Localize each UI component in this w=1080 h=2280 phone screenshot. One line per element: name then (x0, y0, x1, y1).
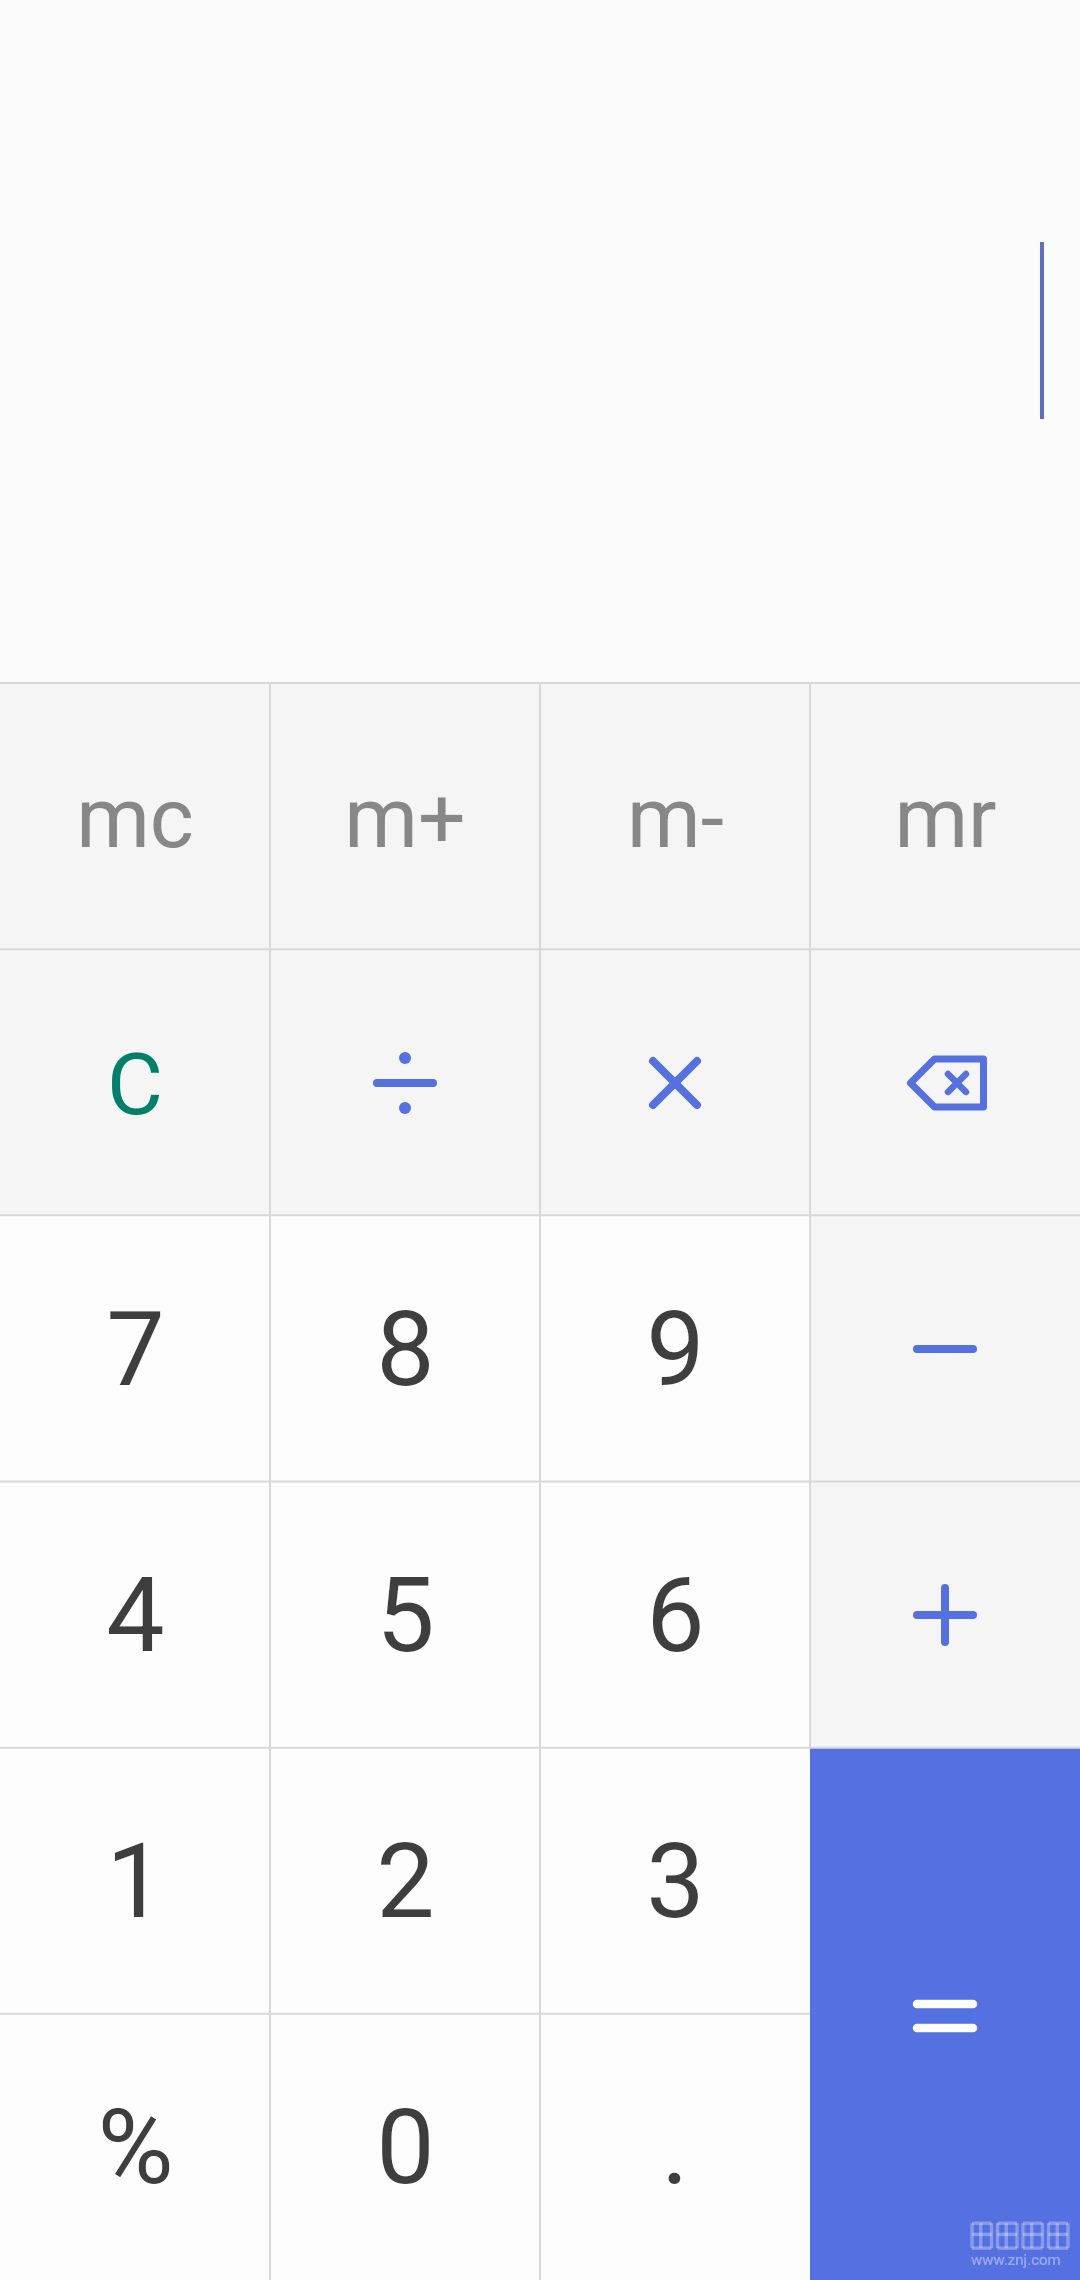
staticText: 9 (646, 1289, 705, 1411)
button[interactable]: Equals (810, 1748, 1080, 2280)
button[interactable]: C (0, 950, 270, 1216)
staticText: 6 (646, 1555, 705, 1677)
staticText: m- (627, 769, 724, 867)
button[interactable]: m- (540, 683, 810, 950)
staticText: 3 (646, 1821, 705, 1943)
staticText: 1 (106, 1821, 165, 1943)
button[interactable]: m+ (270, 683, 540, 950)
button[interactable]: Minus (810, 1216, 1080, 1482)
staticText: 8 (376, 1289, 435, 1411)
button[interactable]: 5 (270, 1482, 540, 1748)
button[interactable]: 7 (0, 1216, 270, 1482)
button[interactable]: Divide (270, 950, 540, 1216)
button[interactable]: mc (0, 683, 270, 950)
staticText: % (97, 2087, 174, 2209)
button[interactable]: mr (810, 683, 1080, 950)
button[interactable]: Multiply (540, 950, 810, 1216)
button[interactable]: 4 (0, 1482, 270, 1748)
staticText: 7 (106, 1289, 165, 1411)
button[interactable]: % (0, 2014, 270, 2280)
button[interactable]: 6 (540, 1482, 810, 1748)
staticText: www.znj.com (971, 2251, 1061, 2269)
button[interactable]: 0 (270, 2014, 540, 2280)
staticText: m+ (344, 769, 466, 867)
button[interactable]: 8 (270, 1216, 540, 1482)
button[interactable]: 1 (0, 1748, 270, 2014)
button[interactable]: 3 (540, 1748, 810, 2014)
staticText: 4 (106, 1555, 165, 1677)
button[interactable]: 2 (270, 1748, 540, 2014)
button[interactable]: 9 (540, 1216, 810, 1482)
staticText: . (661, 2087, 689, 2209)
button[interactable]: Decimal point (540, 2014, 810, 2280)
button[interactable]: Plus (810, 1482, 1080, 1748)
staticText: 0 (376, 2087, 435, 2209)
staticText: mc (76, 769, 194, 867)
button[interactable]: Backspace (810, 950, 1080, 1216)
staticText: mr (894, 769, 997, 867)
staticText: 2 (376, 1821, 435, 1943)
staticText: C (107, 1034, 163, 1135)
staticText: 5 (376, 1555, 435, 1677)
